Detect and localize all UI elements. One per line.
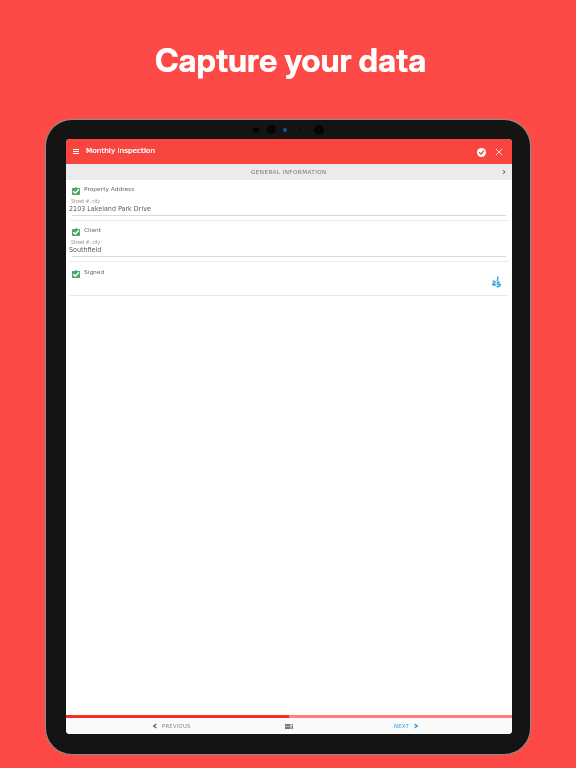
staticText: Signed [84, 269, 105, 276]
button[interactable]: NEXT [376, 718, 436, 734]
staticText: Street #, city [71, 240, 101, 245]
staticText: GENERAL INFORMATION [251, 169, 327, 176]
staticText: 2103 Lakeland Park Drive [69, 205, 151, 212]
staticText: Monthly inspection [86, 146, 156, 154]
staticText: Southfield [69, 246, 102, 253]
button[interactable]: Signed [66, 262, 512, 296]
button[interactable]: Property Address [66, 180, 512, 221]
button[interactable]: GENERAL INFORMATION [66, 164, 512, 180]
staticText: Street #, city [71, 199, 101, 204]
staticText: Client [84, 227, 102, 234]
button[interactable]: Complete [473, 144, 489, 160]
button[interactable]: Client [66, 221, 512, 262]
button[interactable]: Menu [68, 139, 84, 163]
staticText: NEXT [394, 723, 409, 729]
staticText: Property Address [84, 186, 135, 193]
button[interactable]: Close [491, 144, 507, 160]
button[interactable]: Table view [278, 718, 300, 734]
button[interactable]: PREVIOUS [132, 718, 212, 734]
staticText: PREVIOUS [162, 723, 191, 729]
staticText: Capture your data [155, 41, 427, 80]
